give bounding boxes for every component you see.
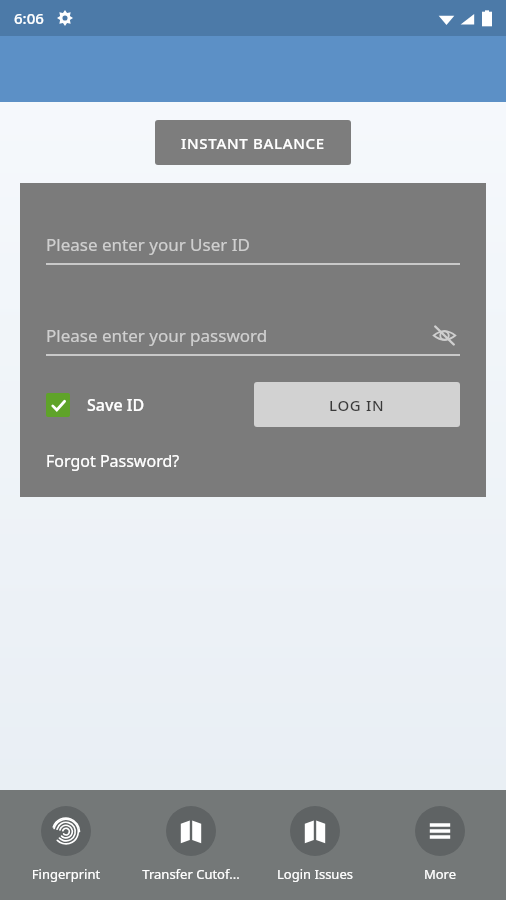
button[interactable]: Login Issues: [257, 806, 373, 883]
staticText: Login Issues: [257, 865, 373, 883]
button[interactable]: Transfer Cutoff times: [133, 806, 249, 883]
button[interactable]: Show password: [428, 319, 460, 351]
staticText: More: [382, 865, 498, 883]
staticText: 6:06: [14, 8, 44, 28]
button[interactable]: Save ID: [46, 393, 145, 417]
staticText: Fingerprint: [8, 865, 124, 883]
staticText: LOG IN: [329, 395, 385, 415]
button[interactable]: Please enter your password: [46, 316, 460, 354]
staticText: INSTANT BALANCE: [181, 133, 325, 153]
staticText: Save ID: [87, 394, 145, 416]
staticText: Forgot Password?: [46, 450, 180, 472]
staticText: Transfer Cutof...: [133, 865, 249, 883]
button[interactable]: More options: [382, 806, 498, 883]
staticText: Please enter your User ID: [46, 233, 250, 256]
staticText: Please enter your password: [46, 324, 268, 347]
button[interactable]: Please enter your User ID: [46, 225, 460, 263]
button[interactable]: INSTANT BALANCE: [155, 120, 351, 165]
button[interactable]: Forgot Password?: [46, 450, 180, 472]
button[interactable]: Fingerprint login: [8, 806, 124, 883]
button[interactable]: LOG IN: [254, 382, 460, 427]
